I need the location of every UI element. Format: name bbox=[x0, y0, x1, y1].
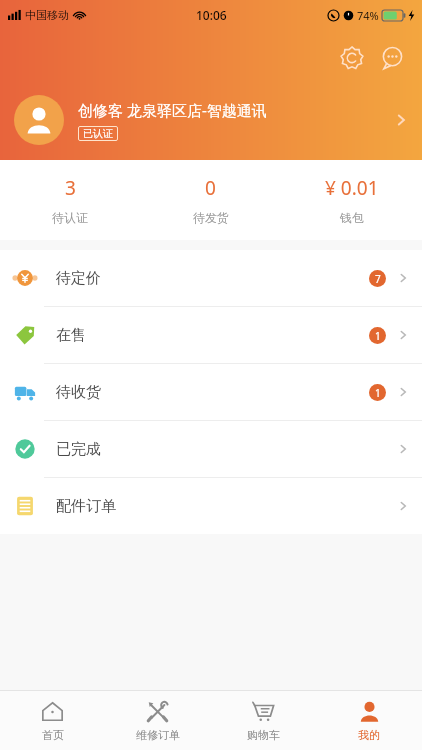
staticText: 钱包 bbox=[340, 210, 364, 225]
staticText: 已认证 bbox=[83, 127, 113, 140]
staticText: 待收货 bbox=[56, 383, 369, 402]
staticText: 7 bbox=[375, 272, 381, 286]
staticText: 3 bbox=[65, 175, 76, 201]
button[interactable]: 首页 bbox=[0, 691, 105, 750]
staticText: 10:06 bbox=[196, 7, 227, 23]
staticText: 已完成 bbox=[56, 440, 396, 459]
button[interactable]: 我的 bbox=[316, 691, 422, 750]
staticText: 0 bbox=[205, 175, 216, 201]
staticText: 首页 bbox=[42, 728, 64, 742]
button[interactable]: Messages bbox=[372, 38, 412, 78]
button[interactable]: 待定价 bbox=[0, 250, 422, 307]
button[interactable]: 0 bbox=[140, 160, 281, 240]
staticText: 1 bbox=[375, 386, 381, 400]
button[interactable]: 购物车 bbox=[210, 691, 316, 750]
button[interactable]: Settings bbox=[332, 38, 372, 78]
button[interactable]: 已完成 bbox=[0, 421, 422, 478]
staticText: 1 bbox=[375, 329, 381, 343]
staticText: 待发货 bbox=[193, 210, 229, 225]
staticText: 维修订单 bbox=[136, 728, 180, 742]
staticText: 在售 bbox=[56, 326, 369, 345]
button[interactable]: ¥ 0.01 bbox=[281, 160, 422, 240]
staticText: ¥ 0.01 bbox=[325, 175, 379, 201]
staticText: 待认证 bbox=[52, 210, 88, 225]
button[interactable]: 配件订单 bbox=[0, 478, 422, 534]
button[interactable]: 维修订单 bbox=[105, 691, 210, 750]
button[interactable]: 创修客 龙泉驿区店-智越通讯 bbox=[0, 80, 422, 160]
button[interactable]: 待收货 bbox=[0, 364, 422, 421]
staticText: 购物车 bbox=[247, 728, 280, 742]
staticText: 我的 bbox=[358, 728, 380, 742]
staticText: 待定价 bbox=[56, 269, 369, 288]
button[interactable]: 3 bbox=[0, 160, 140, 240]
button[interactable]: 在售 bbox=[0, 307, 422, 364]
staticText: 创修客 龙泉驿区店-智越通讯 bbox=[78, 100, 267, 120]
staticText: 配件订单 bbox=[56, 497, 396, 516]
staticText: 74% bbox=[357, 8, 379, 23]
staticText: 中国移动 bbox=[25, 8, 69, 22]
